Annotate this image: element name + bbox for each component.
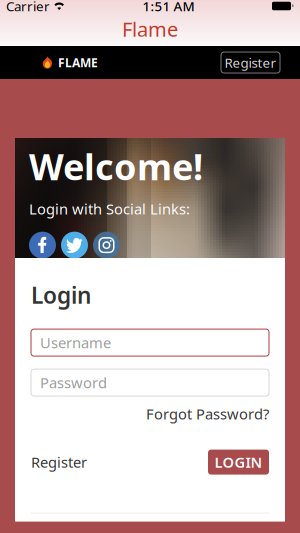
staticText: LOGIN xyxy=(214,452,262,472)
button[interactable]: Instagram xyxy=(93,232,120,259)
button[interactable]: Twitter xyxy=(61,232,88,259)
staticText: FLAME xyxy=(58,54,98,70)
button[interactable]: Username xyxy=(31,329,269,356)
button[interactable]: Password xyxy=(31,369,269,396)
button[interactable]: LOGIN xyxy=(208,450,269,475)
staticText: Register xyxy=(31,452,87,472)
staticText: Password xyxy=(40,373,107,392)
staticText: Login xyxy=(31,280,91,310)
staticText: Username xyxy=(40,333,111,352)
staticText: Welcome! xyxy=(29,142,203,190)
button[interactable]: Register xyxy=(221,52,280,73)
button[interactable]: Register xyxy=(31,452,87,472)
staticText: Forgot Password? xyxy=(146,404,269,424)
staticText: Login with Social Links: xyxy=(29,199,190,219)
button[interactable]: FLAME xyxy=(0,46,106,79)
button[interactable]: Facebook xyxy=(29,232,56,259)
button[interactable]: Forgot Password? xyxy=(146,404,269,424)
staticText: Carrier xyxy=(6,0,50,15)
staticText: Flame xyxy=(122,16,178,42)
staticText: 1:51 AM xyxy=(142,0,194,15)
button[interactable]: Flame xyxy=(0,16,300,42)
staticText: Register xyxy=(224,54,276,71)
